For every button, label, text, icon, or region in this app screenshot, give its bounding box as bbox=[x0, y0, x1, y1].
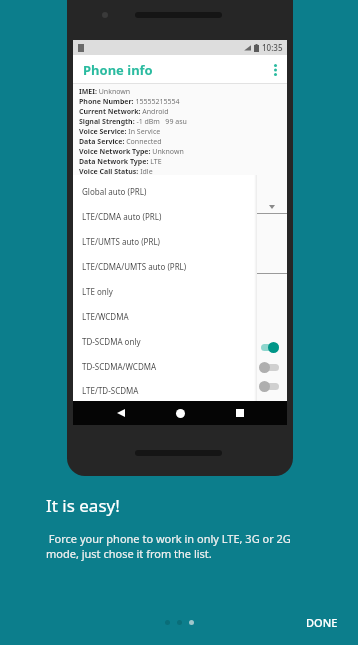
button[interactable]: Recent apps bbox=[228, 401, 252, 425]
staticText: DONE bbox=[306, 615, 338, 630]
button[interactable]: Home bbox=[168, 401, 192, 425]
button[interactable]: Toggle bbox=[259, 360, 283, 374]
staticText: Phone info bbox=[83, 61, 153, 79]
staticText: Signal Strength: -1 dBm 99 asu bbox=[79, 117, 187, 127]
staticText: Global auto (PRL) bbox=[82, 186, 147, 197]
staticText: Force your phone to work in only LTE, 3G… bbox=[46, 531, 312, 561]
staticText: Voice Network Type: Unknown bbox=[79, 147, 184, 157]
staticText: It is easy! bbox=[46, 494, 120, 517]
staticText: TD-SCDMA/WCDMA bbox=[82, 361, 157, 372]
button[interactable]: More options bbox=[267, 62, 283, 78]
staticText: IMEI: Unknown bbox=[79, 87, 131, 97]
staticText: Data Service: Connected bbox=[79, 137, 162, 147]
staticText: Current Network: Android bbox=[79, 107, 169, 117]
staticText: LTE/WCDMA bbox=[82, 311, 129, 322]
button[interactable]: TD-SCDMA only bbox=[73, 329, 257, 354]
button[interactable]: DONE bbox=[296, 611, 348, 633]
button[interactable]: LTE/UMTS auto (PRL) bbox=[73, 229, 257, 254]
staticText: LTE/CDMA auto (PRL) bbox=[82, 211, 162, 222]
staticText: 10:35 bbox=[262, 42, 283, 53]
staticText: Phone Number: 15555215554 bbox=[79, 97, 180, 107]
button[interactable]: LTE/CDMA/UMTS auto (PRL) bbox=[73, 254, 257, 279]
button[interactable]: Back bbox=[109, 401, 133, 425]
staticText: LTE/UMTS auto (PRL) bbox=[82, 236, 160, 247]
staticText: Data Network Type: LTE bbox=[79, 157, 162, 167]
button[interactable]: LTE/TD-SCDMA bbox=[73, 379, 257, 401]
button[interactable]: Global auto (PRL) bbox=[73, 179, 257, 204]
button[interactable]: LTE/WCDMA bbox=[73, 304, 257, 329]
button[interactable]: LTE/CDMA auto (PRL) bbox=[73, 204, 257, 229]
staticText: TD-SCDMA only bbox=[82, 336, 141, 347]
staticText: LTE/CDMA/UMTS auto (PRL) bbox=[82, 261, 187, 272]
button[interactable]: Toggle bbox=[259, 379, 283, 393]
button[interactable]: Toggle bbox=[259, 340, 283, 354]
button[interactable]: TD-SCDMA/WCDMA bbox=[73, 354, 257, 379]
staticText: Voice Call Status: Idle bbox=[79, 167, 153, 177]
staticText: LTE/TD-SCDMA bbox=[82, 385, 139, 396]
button[interactable]: LTE only bbox=[73, 279, 257, 304]
staticText: Voice Service: In Service bbox=[79, 127, 161, 137]
staticText: LTE only bbox=[82, 286, 113, 297]
